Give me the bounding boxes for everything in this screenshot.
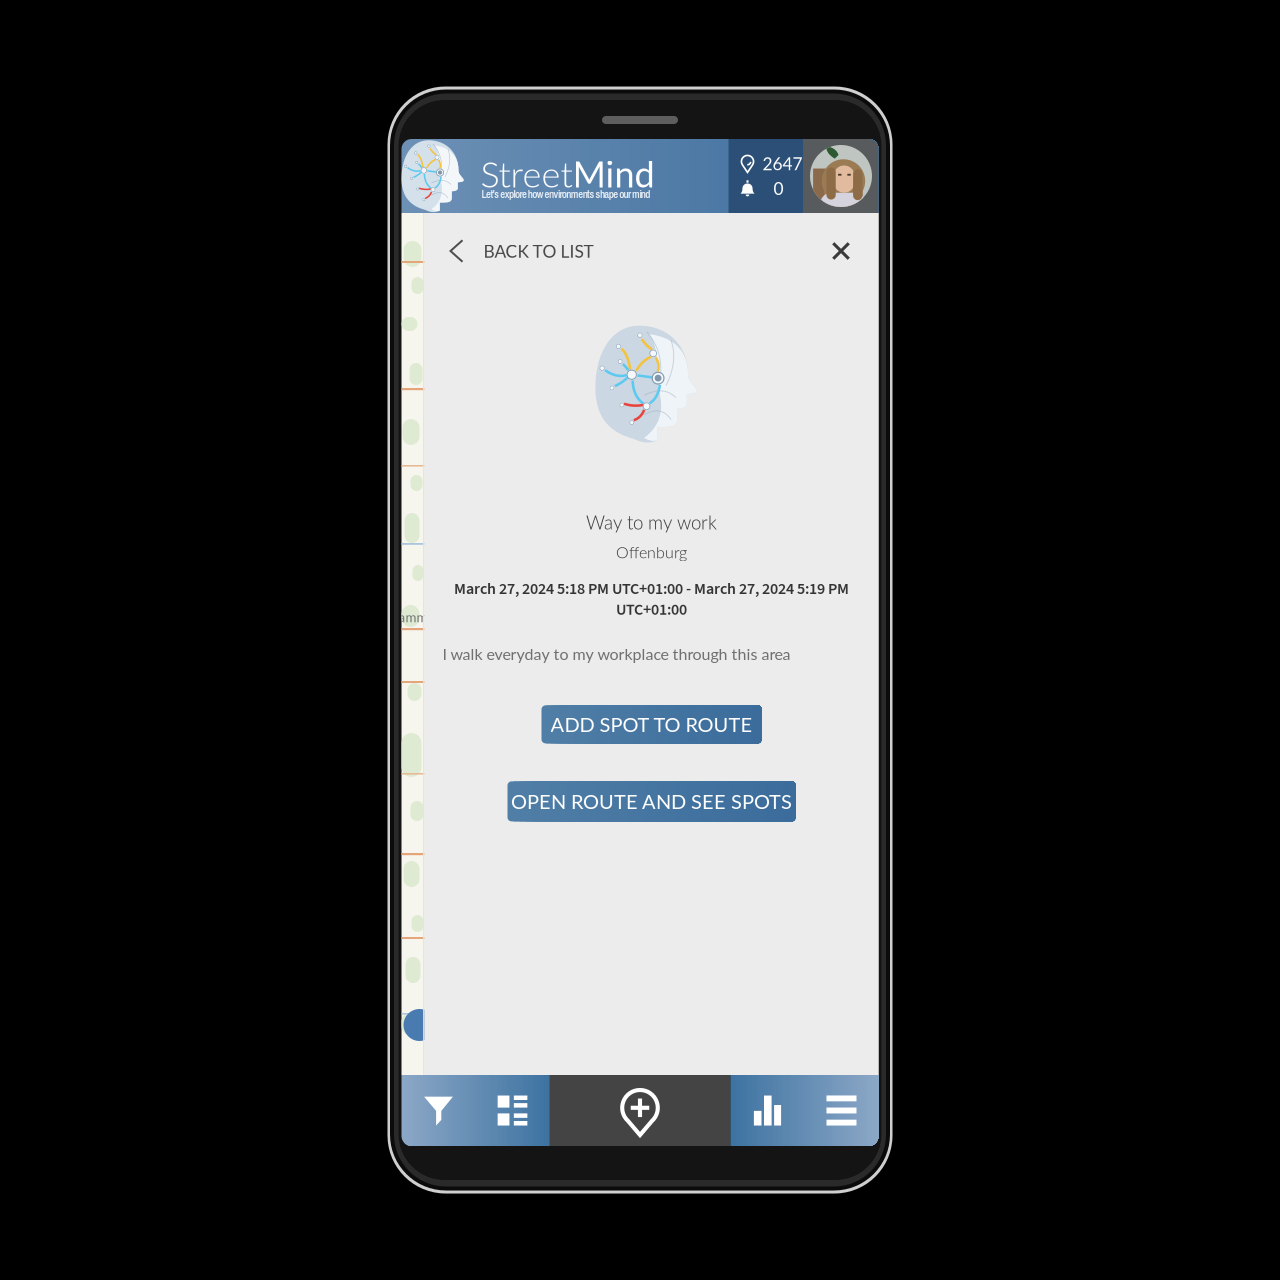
staticText: March 27, 2024 5:18 PM UTC+01:00 - March… — [454, 578, 849, 600]
staticText: ADD SPOT TO ROUTE — [550, 712, 752, 736]
staticText: I walk everyday to my workplace through … — [442, 644, 790, 663]
button[interactable]: Profile — [803, 139, 878, 213]
button[interactable]: Add spot — [549, 1075, 730, 1146]
staticText: UTC+01:00 — [616, 598, 687, 621]
staticText: Way to my work — [586, 511, 717, 533]
staticText: BACK TO LIST — [483, 241, 593, 261]
button[interactable]: ADD SPOT TO ROUTE — [541, 705, 761, 743]
staticText: 0 — [773, 178, 783, 199]
button[interactable]: Points and notifications — [728, 139, 803, 213]
button[interactable]: Filter — [401, 1075, 475, 1146]
button[interactable]: Close — [803, 213, 878, 287]
staticText: Mind — [572, 152, 654, 195]
button[interactable]: Menu — [804, 1075, 878, 1146]
staticText: Offenburg — [616, 542, 687, 562]
staticText: Street — [480, 152, 572, 195]
staticText: 2647 — [762, 153, 802, 174]
button[interactable]: OPEN ROUTE AND SEE SPOTS — [507, 781, 795, 821]
button[interactable]: BACK TO LIST — [424, 213, 611, 287]
staticText: amm — [398, 609, 427, 625]
button[interactable]: Statistics — [730, 1075, 804, 1146]
staticText: Let's explore how environments shape our… — [481, 187, 650, 201]
staticText: OPEN ROUTE AND SEE SPOTS — [511, 789, 792, 813]
button[interactable]: List view — [475, 1075, 549, 1146]
